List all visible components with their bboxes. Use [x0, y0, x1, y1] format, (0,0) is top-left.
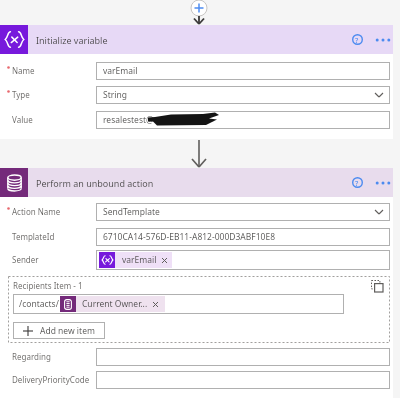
staticText: SendTemplate [103, 206, 160, 218]
staticText: Sender [12, 254, 39, 265]
staticText: varEmail [103, 65, 138, 77]
staticText: ? [355, 35, 359, 45]
staticText: Current Owner... [82, 298, 148, 310]
button[interactable]: 6710CA14-576D-EB11-A812-000D3ABF10E8 [96, 228, 390, 246]
button[interactable]: Help [347, 25, 367, 54]
staticText: Recipients Item - 1 [13, 280, 83, 291]
staticText: varEmail [122, 254, 157, 266]
staticText: /contacts/ [19, 298, 59, 310]
button[interactable]: SendTemplate [96, 203, 390, 221]
button[interactable]: String [96, 86, 390, 104]
staticText: Regarding [12, 351, 51, 362]
staticText: String [103, 89, 127, 101]
staticText: Value [12, 114, 33, 125]
button[interactable]: resalestest@ [96, 111, 390, 129]
staticText: DeliveryPriorityCode [12, 374, 90, 385]
button[interactable]: /contacts/ [13, 294, 344, 314]
staticText: Name [12, 65, 35, 76]
button[interactable]: varEmail [96, 250, 390, 270]
button[interactable]: Initialize variable [0, 25, 393, 54]
staticText: Initialize variable [36, 34, 108, 46]
button[interactable]: Add new item [13, 322, 105, 339]
button[interactable]: Insert a new step [184, 0, 214, 25]
button[interactable]: Help [347, 168, 367, 197]
staticText: Perform an unbound action [36, 177, 154, 189]
button[interactable]: More commands [373, 25, 393, 54]
button[interactable] [96, 371, 390, 389]
staticText: TemplateId [12, 231, 55, 242]
staticText: ? [355, 178, 359, 188]
staticText: Add new item [40, 325, 95, 337]
button[interactable]: Perform an unbound action [0, 168, 393, 197]
staticText: Type [12, 89, 30, 100]
button[interactable]: varEmail [96, 62, 390, 80]
staticText: Action Name [12, 206, 61, 217]
button[interactable] [96, 348, 390, 366]
button[interactable]: Delete item [369, 279, 385, 292]
staticText: 6710CA14-576D-EB11-A812-000D3ABF10E8 [103, 231, 276, 243]
staticText: resalestest@ [103, 114, 154, 126]
button[interactable]: More commands [373, 168, 393, 197]
